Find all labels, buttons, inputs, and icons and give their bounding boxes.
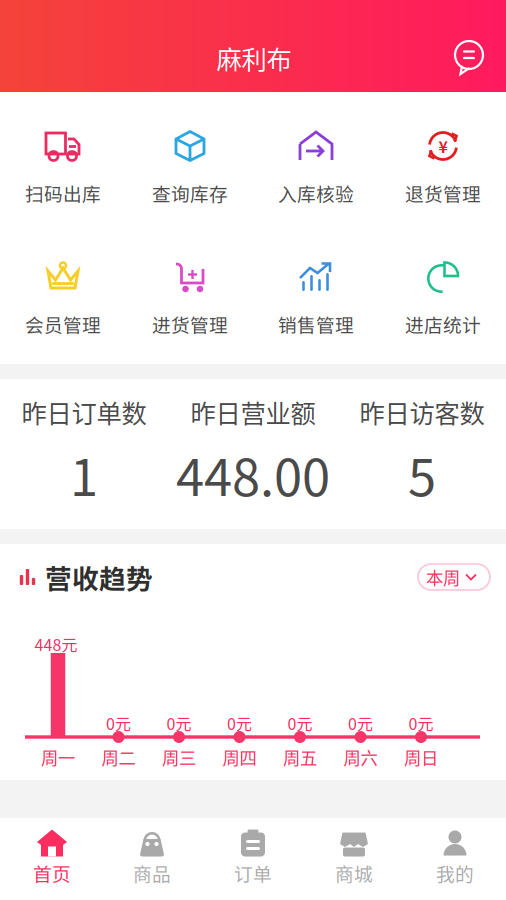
staticText: 商城: [335, 859, 373, 886]
button[interactable]: 本周: [418, 564, 490, 590]
staticText: 0元: [408, 711, 433, 735]
staticText: 0元: [227, 711, 252, 735]
staticText: 进货管理: [152, 310, 228, 337]
staticText: 周四: [222, 744, 256, 770]
staticText: 会员管理: [25, 310, 101, 337]
button[interactable]: 订单: [202, 818, 303, 900]
staticText: 周六: [343, 744, 377, 770]
staticText: 订单: [234, 859, 272, 886]
staticText: 5: [408, 437, 436, 511]
staticText: 首页: [33, 859, 71, 886]
button[interactable]: 首页: [1, 818, 102, 900]
staticText: 昨日营业额: [190, 394, 315, 430]
button[interactable]: ¥: [380, 112, 506, 212]
button[interactable]: Messages: [448, 36, 492, 80]
staticText: ¥: [438, 134, 447, 158]
staticText: 0元: [106, 711, 131, 735]
staticText: 退货管理: [405, 179, 481, 206]
button[interactable]: 进货管理: [127, 243, 253, 343]
staticText: 0元: [166, 711, 191, 735]
staticText: 周日: [404, 744, 438, 770]
staticText: 周一: [41, 744, 75, 770]
button[interactable]: 扫码出库: [0, 112, 126, 212]
button[interactable]: 入库核验: [253, 112, 379, 212]
staticText: 扫码出库: [25, 179, 101, 206]
button[interactable]: 商城: [303, 818, 404, 900]
staticText: 周五: [283, 744, 317, 770]
button[interactable]: 进店统计: [380, 243, 506, 343]
staticText: 1: [70, 437, 98, 511]
staticText: 周二: [101, 744, 135, 770]
staticText: 0元: [287, 711, 312, 735]
button[interactable]: 查询库存: [127, 112, 253, 212]
button[interactable]: 会员管理: [0, 243, 126, 343]
staticText: 本周: [426, 564, 460, 590]
button[interactable]: 商品: [101, 818, 202, 900]
staticText: 0元: [348, 711, 373, 735]
staticText: 商品: [133, 859, 171, 886]
staticText: 昨日订单数: [21, 394, 146, 430]
staticText: 入库核验: [278, 179, 354, 206]
button[interactable]: 销售管理: [253, 243, 379, 343]
staticText: 麻利布: [216, 40, 291, 76]
staticText: 销售管理: [278, 310, 354, 337]
staticText: 进店统计: [405, 310, 481, 337]
staticText: 昨日访客数: [359, 394, 484, 430]
staticText: 周三: [162, 744, 196, 770]
staticText: 查询库存: [152, 179, 228, 206]
button[interactable]: 我的: [404, 818, 505, 900]
staticText: 448.00: [176, 437, 330, 511]
staticText: 448元: [34, 632, 77, 656]
staticText: 我的: [436, 859, 474, 886]
staticText: 营收趋势: [45, 558, 153, 596]
